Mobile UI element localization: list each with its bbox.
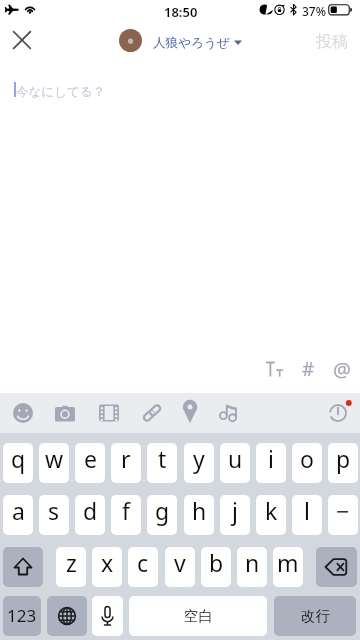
staticText: v	[174, 547, 186, 578]
button[interactable]: Voice input	[92, 596, 123, 636]
button[interactable]: v	[165, 547, 195, 587]
button[interactable]: Change language	[47, 596, 87, 636]
button[interactable]: Link	[138, 399, 166, 427]
staticText: 37%	[302, 3, 326, 19]
staticText: f	[122, 495, 130, 526]
button[interactable]: −	[328, 495, 358, 535]
staticText: 人狼やろうぜ	[153, 35, 230, 51]
staticText: @	[333, 356, 351, 382]
button[interactable]: x	[92, 547, 122, 587]
button[interactable]: a	[3, 495, 33, 535]
button[interactable]: Backspace	[316, 547, 357, 587]
staticText: c	[137, 547, 149, 578]
staticText: e	[84, 443, 97, 474]
button[interactable]: Emoji	[9, 399, 37, 427]
staticText: t	[158, 443, 167, 474]
button[interactable]: i	[256, 443, 286, 483]
staticText: w	[45, 443, 64, 474]
button[interactable]: @	[329, 356, 355, 382]
staticText: 18:50	[164, 3, 198, 21]
staticText: o	[300, 443, 314, 474]
button[interactable]: y	[184, 443, 214, 483]
staticText: n	[245, 547, 260, 578]
staticText: d	[83, 495, 98, 526]
staticText: 123	[7, 604, 37, 627]
button[interactable]: h	[184, 495, 214, 535]
button[interactable]: Camera	[51, 399, 79, 427]
button[interactable]: 123	[3, 596, 41, 636]
staticText: r	[121, 443, 131, 474]
button[interactable]: c	[128, 547, 158, 587]
staticText: k	[265, 495, 278, 526]
button[interactable]: p	[328, 443, 358, 483]
button[interactable]: u	[220, 443, 250, 483]
staticText: i	[268, 443, 274, 474]
button[interactable]: t	[147, 443, 177, 483]
staticText: s	[48, 495, 60, 526]
staticText: l	[304, 495, 310, 526]
staticText: 投稿	[316, 32, 348, 52]
staticText: g	[155, 495, 170, 526]
button[interactable]: o	[292, 443, 322, 483]
button[interactable]: Shift	[3, 547, 43, 587]
button[interactable]: 空白	[129, 596, 267, 636]
button[interactable]: e	[75, 443, 105, 483]
button[interactable]: #	[295, 356, 321, 382]
button[interactable]: Schedule	[324, 399, 352, 427]
button[interactable]: d	[75, 495, 105, 535]
staticText: x	[101, 547, 114, 578]
staticText: h	[192, 495, 207, 526]
button[interactable]: Music	[215, 399, 243, 427]
staticText: 今なにしてる？	[16, 84, 105, 100]
staticText: b	[209, 547, 224, 578]
button[interactable]: Text format	[261, 356, 287, 382]
staticText: u	[228, 443, 243, 474]
button[interactable]: z	[56, 547, 86, 587]
staticText: y	[193, 443, 205, 474]
staticText: 改行	[301, 607, 330, 625]
button[interactable]: n	[237, 547, 267, 587]
staticText: #	[302, 356, 315, 382]
button[interactable]: Location	[176, 399, 204, 427]
button[interactable]: Video	[95, 399, 123, 427]
button[interactable]: r	[111, 443, 141, 483]
staticText: j	[232, 495, 238, 526]
button[interactable]: 改行	[274, 596, 356, 636]
button[interactable]: q	[3, 443, 33, 483]
staticText: 空白	[184, 607, 213, 625]
button[interactable]: j	[220, 495, 250, 535]
button[interactable]: 投稿	[306, 28, 358, 54]
staticText: −	[336, 495, 350, 526]
button[interactable]: k	[256, 495, 286, 535]
button[interactable]: l	[292, 495, 322, 535]
button[interactable]: 人狼やろうぜ	[119, 29, 242, 52]
button[interactable]: g	[147, 495, 177, 535]
button[interactable]: f	[111, 495, 141, 535]
staticText: a	[12, 495, 25, 526]
staticText: q	[11, 443, 26, 474]
staticText: p	[336, 443, 351, 474]
staticText: z	[66, 547, 77, 578]
button[interactable]: Close	[6, 24, 38, 56]
button[interactable]: s	[39, 495, 69, 535]
button[interactable]: m	[273, 547, 303, 587]
staticText: m	[277, 547, 299, 578]
button[interactable]: w	[39, 443, 69, 483]
button[interactable]: b	[201, 547, 231, 587]
